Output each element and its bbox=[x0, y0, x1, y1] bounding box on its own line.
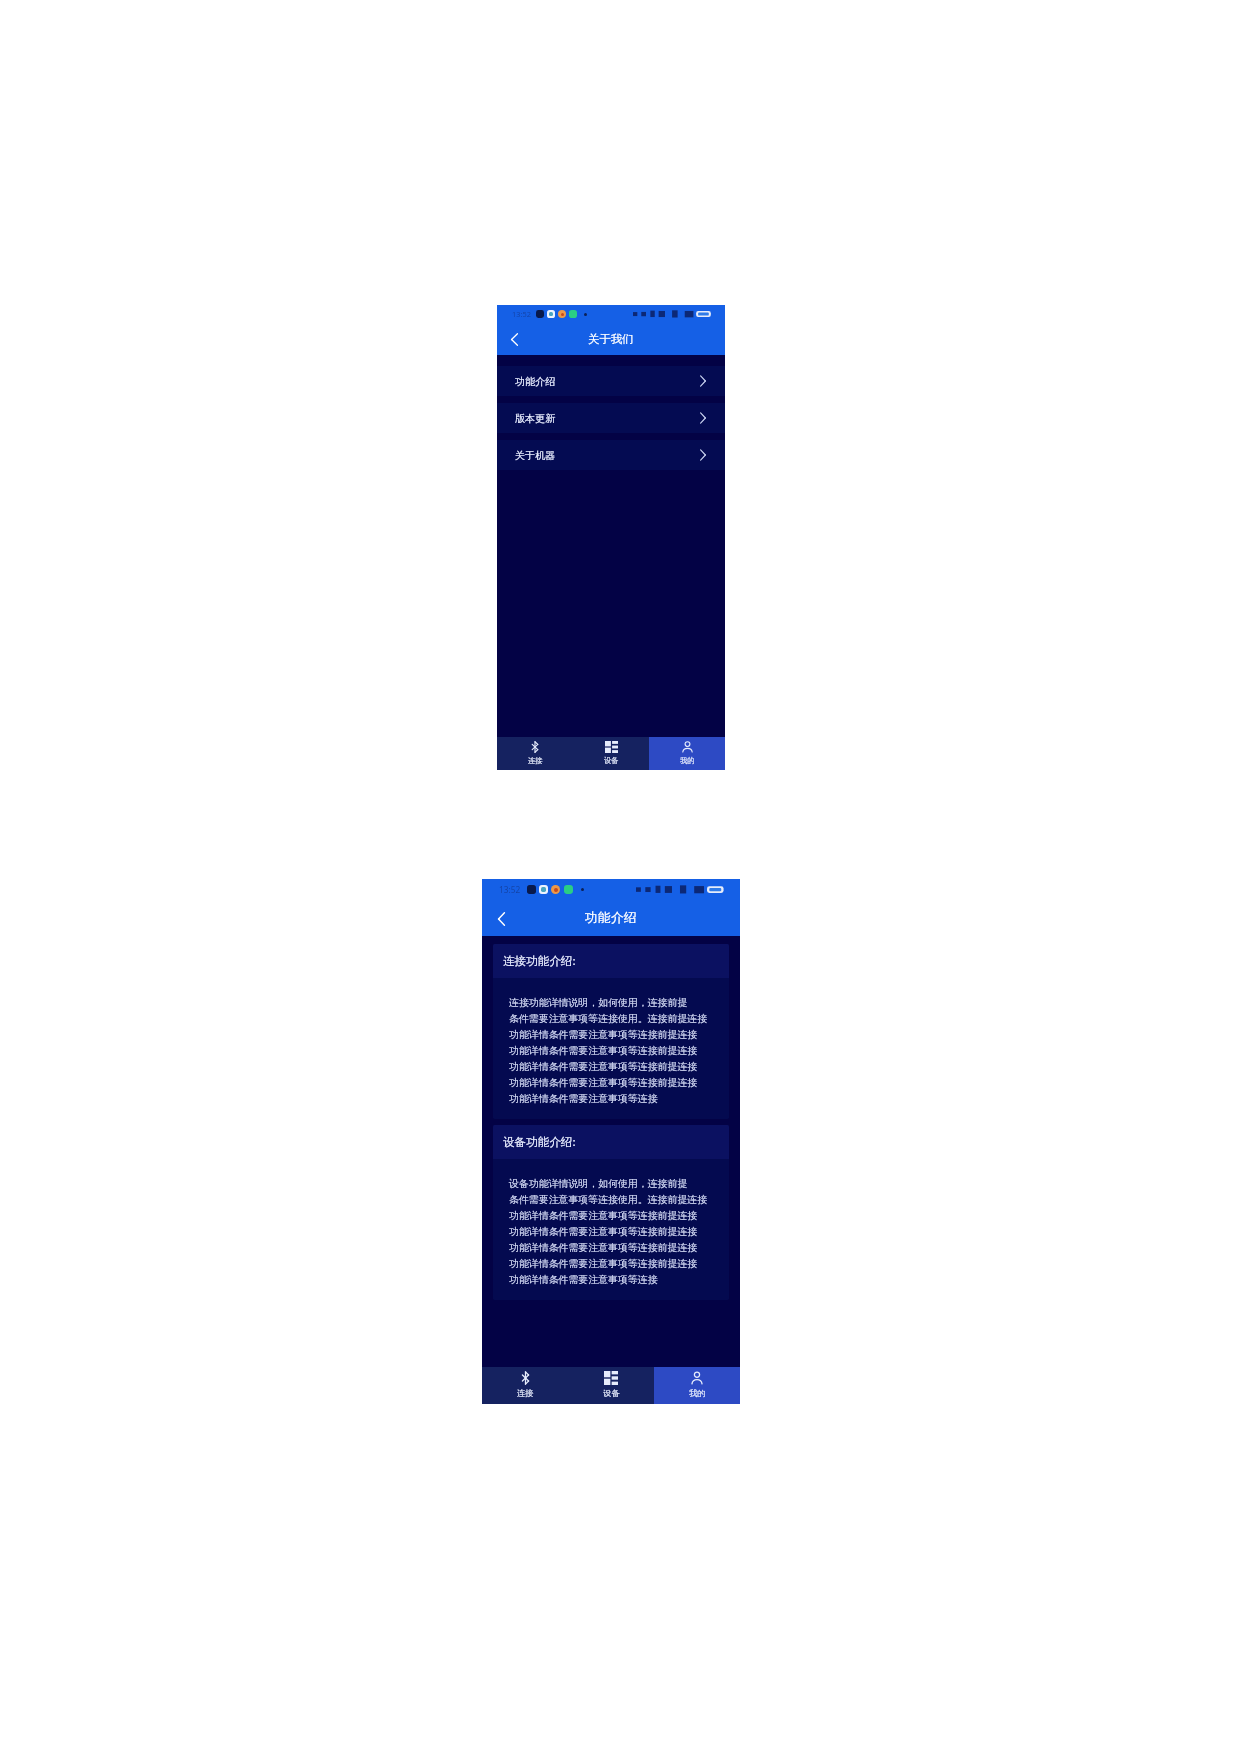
staticText: 功能详情条件需要注意事项等连接前提连接 bbox=[509, 1076, 698, 1088]
staticText: 功能详情条件需要注意事项等连接 bbox=[509, 1273, 658, 1285]
button[interactable]: 设备 bbox=[568, 1367, 654, 1404]
button[interactable]: 设备 bbox=[573, 737, 649, 770]
staticText: 功能详情条件需要注意事项等连接 bbox=[509, 1092, 658, 1104]
button[interactable]: Back bbox=[489, 906, 514, 931]
staticText: 功能详情条件需要注意事项等连接前提连接 bbox=[509, 1044, 698, 1056]
staticText: 连接 bbox=[528, 756, 543, 765]
staticText: 连接功能详情说明，如何使用，连接前提 bbox=[509, 996, 688, 1008]
staticText: 功能详情条件需要注意事项等连接前提连接 bbox=[509, 1257, 698, 1269]
button[interactable]: 我的 bbox=[649, 737, 725, 770]
staticText: 功能介绍 bbox=[585, 910, 637, 926]
button[interactable]: 我的 bbox=[654, 1367, 740, 1404]
staticText: 设备功能介绍: bbox=[503, 1134, 576, 1150]
button[interactable]: 连接 bbox=[482, 1367, 568, 1404]
button[interactable]: 关于机器 bbox=[497, 440, 725, 470]
button[interactable]: Back bbox=[503, 328, 525, 350]
staticText: 功能详情条件需要注意事项等连接前提连接 bbox=[509, 1225, 698, 1237]
staticText: 功能详情条件需要注意事项等连接前提连接 bbox=[509, 1028, 698, 1040]
staticText: 设备 bbox=[604, 756, 619, 765]
staticText: 功能详情条件需要注意事项等连接前提连接 bbox=[509, 1209, 698, 1221]
staticText: 条件需要注意事项等连接使用。连接前提连接 bbox=[509, 1193, 708, 1205]
staticText: 13:52 bbox=[499, 884, 521, 895]
staticText: 功能详情条件需要注意事项等连接前提连接 bbox=[509, 1060, 698, 1072]
staticText: 版本更新 bbox=[515, 412, 556, 425]
staticText: 功能介绍 bbox=[515, 375, 556, 388]
staticText: 我的 bbox=[680, 756, 695, 765]
staticText: 连接功能介绍: bbox=[503, 953, 576, 969]
staticText: 连接 bbox=[517, 1388, 534, 1398]
staticText: 13:52 bbox=[512, 309, 531, 319]
staticText: 关于我们 bbox=[588, 332, 634, 346]
staticText: 设备功能详情说明，如何使用，连接前提 bbox=[509, 1177, 688, 1189]
staticText: 关于机器 bbox=[515, 449, 556, 462]
staticText: 条件需要注意事项等连接使用。连接前提连接 bbox=[509, 1012, 708, 1024]
staticText: 功能详情条件需要注意事项等连接前提连接 bbox=[509, 1241, 698, 1253]
staticText: 我的 bbox=[689, 1388, 706, 1398]
button[interactable]: 功能介绍 bbox=[497, 366, 725, 396]
staticText: 设备 bbox=[603, 1388, 620, 1398]
button[interactable]: 连接 bbox=[497, 737, 573, 770]
button[interactable]: 版本更新 bbox=[497, 403, 725, 433]
